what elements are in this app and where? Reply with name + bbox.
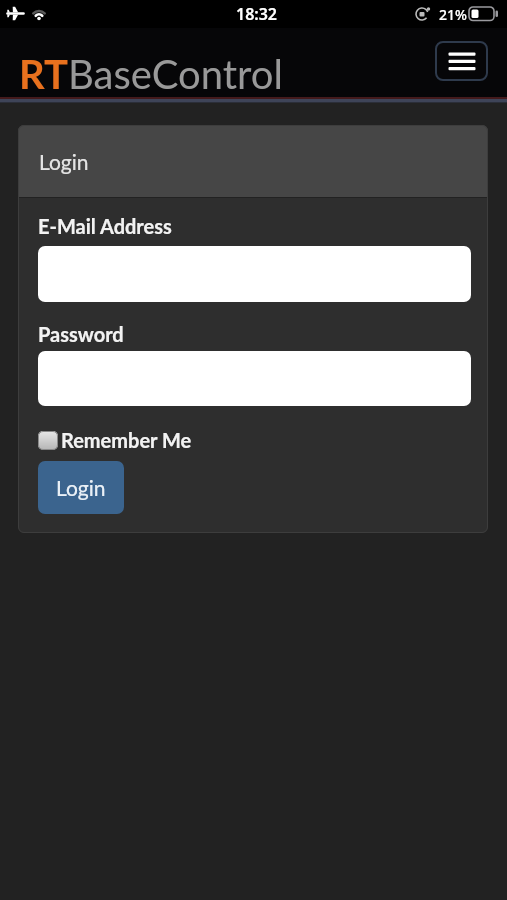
- staticText: 18:32: [236, 3, 278, 25]
- staticText: Login: [56, 475, 106, 500]
- staticText: Remember Me: [61, 428, 192, 452]
- button[interactable]: [38, 246, 471, 302]
- button[interactable]: Remember Me: [38, 428, 192, 452]
- staticText: RTBaseControl: [19, 50, 283, 98]
- staticText: E-Mail Address: [38, 214, 172, 238]
- button[interactable]: [435, 41, 488, 81]
- button[interactable]: Login: [38, 461, 124, 514]
- staticText: 21%: [439, 5, 467, 24]
- button[interactable]: [38, 351, 471, 406]
- staticText: Login: [39, 149, 89, 174]
- staticText: Password: [38, 322, 124, 346]
